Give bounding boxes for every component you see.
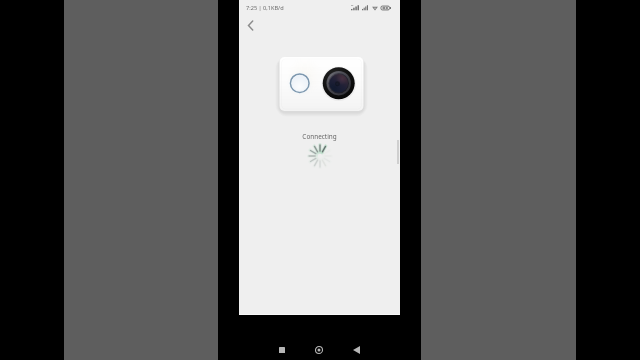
button[interactable]: Home: [307, 338, 331, 360]
button[interactable]: Recent apps: [270, 338, 294, 360]
staticText: 7:25 | 0,1KB/d: [246, 4, 284, 12]
button[interactable]: Back: [241, 16, 259, 34]
staticText: Connecting: [239, 132, 400, 141]
button[interactable]: Back: [344, 338, 368, 360]
